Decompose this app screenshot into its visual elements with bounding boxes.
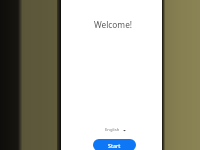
button[interactable]: English <box>101 125 130 135</box>
button[interactable]: Start <box>93 139 136 150</box>
staticText: Start <box>108 142 121 149</box>
staticText: English <box>105 127 120 133</box>
other: Choose language <box>123 129 126 132</box>
staticText: Welcome! <box>94 19 133 30</box>
